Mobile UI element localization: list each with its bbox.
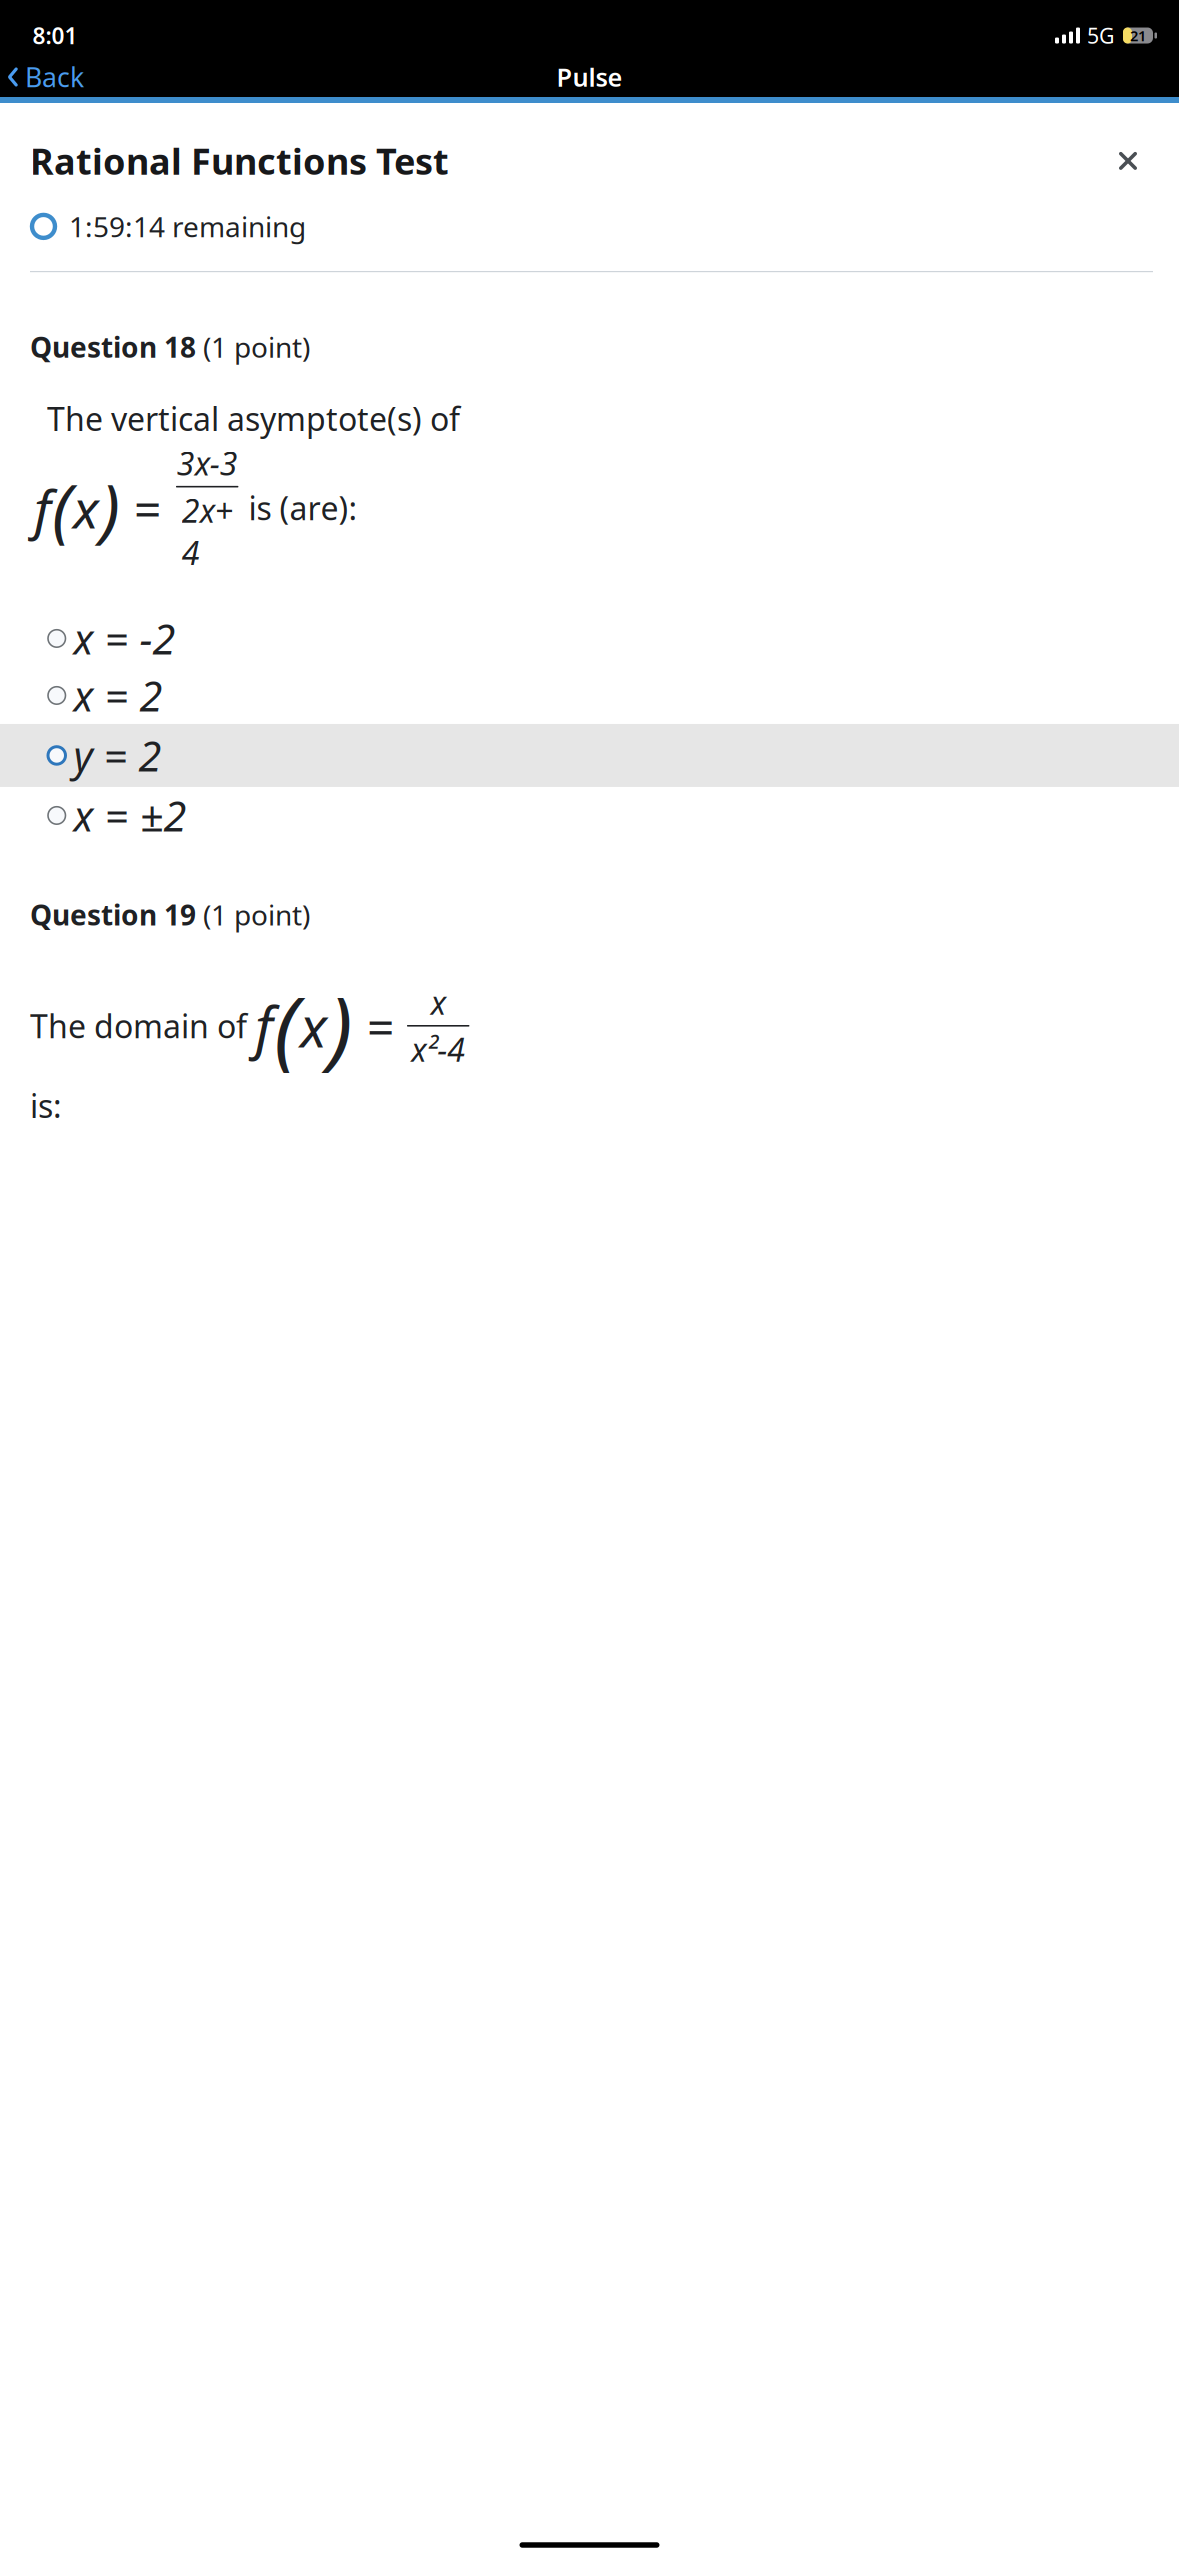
staticText: is (are): [240, 487, 357, 529]
staticText: 5G [1087, 21, 1115, 50]
button[interactable]: x = −2 [0, 610, 1179, 667]
staticText: Pulse [556, 60, 622, 94]
staticText: f [34, 472, 51, 543]
staticText: 2x+4 [182, 489, 233, 574]
button[interactable]: Close test [1105, 138, 1151, 184]
staticText: x = −2 [73, 611, 175, 666]
staticText: 21 [1130, 26, 1146, 45]
staticText: ( [52, 462, 72, 554]
staticText: Rational Functions Test [30, 137, 449, 185]
staticText: The domain of [30, 1004, 255, 1047]
staticText: x [73, 472, 99, 543]
button[interactable]: x = ±2 [0, 787, 1179, 844]
staticText: x [300, 989, 327, 1063]
staticText: 8:01 [32, 20, 77, 50]
staticText: Question 19 [30, 896, 196, 933]
button[interactable]: Back [0, 51, 94, 103]
staticText: ) [100, 462, 120, 554]
staticText: 3x−3 [177, 442, 238, 484]
staticText: (1 point) [196, 896, 310, 933]
staticText: f [255, 989, 273, 1063]
staticText: ) [328, 969, 353, 1082]
staticText: = [133, 476, 160, 540]
staticText: ( [274, 969, 299, 1082]
staticText: (1 point) [196, 328, 310, 365]
staticText: is: [30, 1084, 62, 1127]
staticText: Back [25, 59, 84, 95]
staticText: Question 18 [30, 328, 196, 365]
staticText: = [366, 994, 393, 1058]
staticText: y = 2 [73, 728, 161, 783]
staticText: x [431, 981, 446, 1023]
staticText: x²−4 [411, 1028, 465, 1071]
staticText: x = ±2 [73, 788, 186, 843]
staticText: x = 2 [73, 668, 162, 723]
staticText: The vertical asymptote(s) of [47, 397, 460, 440]
staticText: 1:59:14 remaining [69, 208, 306, 245]
button[interactable]: x = 2 [0, 667, 1179, 724]
button[interactable]: y = 2 [0, 724, 1179, 787]
